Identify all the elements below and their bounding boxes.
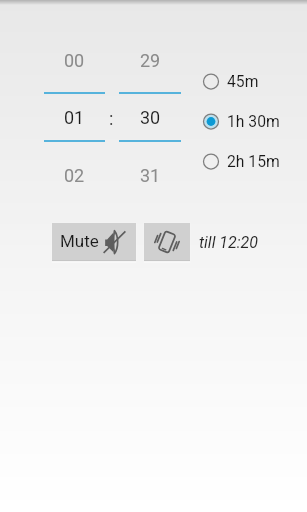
button[interactable]: Vibrate xyxy=(144,223,190,260)
staticText: 01 xyxy=(64,107,85,128)
button[interactable]: 02 xyxy=(44,163,105,187)
staticText: till 12:20 xyxy=(199,233,259,252)
button[interactable]: 2h 15m xyxy=(201,146,297,176)
staticText: 02 xyxy=(64,165,85,186)
button[interactable]: 31 xyxy=(119,163,181,187)
button[interactable]: 1h 30m xyxy=(201,106,297,136)
staticText: 29 xyxy=(140,50,161,71)
button[interactable]: 00 xyxy=(44,48,105,72)
staticText: : xyxy=(109,108,114,129)
button[interactable]: 01 xyxy=(44,105,105,129)
staticText: Mute xyxy=(60,231,99,251)
staticText: 30 xyxy=(140,107,161,128)
button[interactable]: 30 xyxy=(119,105,181,129)
button[interactable]: 29 xyxy=(119,48,181,72)
button[interactable]: 45m xyxy=(201,66,297,96)
button[interactable]: Mute xyxy=(52,223,136,260)
staticText: 1h 30m xyxy=(227,112,280,130)
staticText: 2h 15m xyxy=(227,152,280,170)
staticText: 00 xyxy=(64,50,85,71)
staticText: 45m xyxy=(227,72,259,90)
staticText: 31 xyxy=(140,165,161,186)
